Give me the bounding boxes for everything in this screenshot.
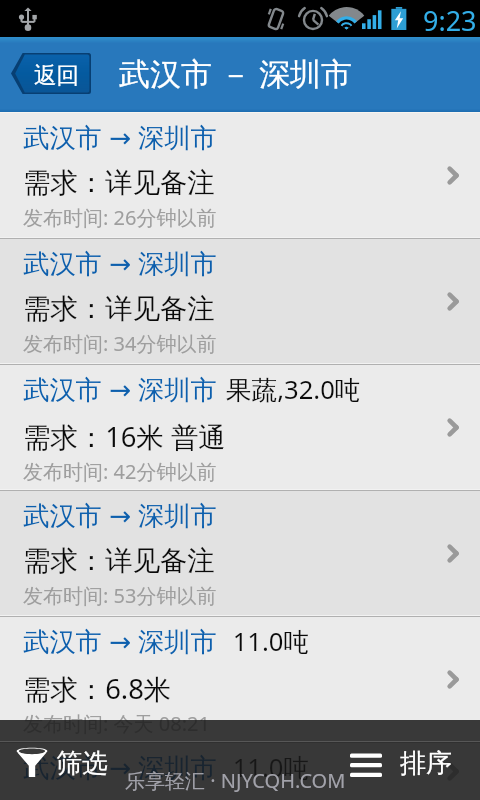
- staticText: 乐享轻汇 · NJYCQH.COM: [125, 767, 346, 794]
- staticText: 需求：6.8米: [23, 670, 172, 707]
- staticText: 武汉市 → 深圳市: [23, 497, 218, 533]
- button[interactable]: 返回: [11, 53, 91, 94]
- staticText: 发布时间: 26分钟以前: [23, 204, 217, 231]
- staticText: 武汉市 → 深圳市: [23, 623, 218, 659]
- staticText: 返回: [34, 61, 79, 89]
- staticText: 武汉市 → 深圳市: [23, 119, 218, 155]
- button[interactable]: 武汉市 → 深圳市: [0, 113, 480, 239]
- staticText: 发布时间: 42分钟以前: [23, 458, 217, 485]
- staticText: 11.0吨: [226, 750, 310, 785]
- staticText: 武汉市 → 深圳市: [23, 245, 218, 281]
- staticText: 武汉市 － 深圳市: [119, 52, 353, 94]
- staticText: 武汉市 → 深圳市: [23, 749, 218, 785]
- button[interactable]: 武汉市 → 深圳市: [0, 239, 480, 365]
- staticText: 武汉市 → 深圳市: [23, 371, 218, 407]
- staticText: 排序: [400, 747, 452, 780]
- button[interactable]: 武汉市 → 深圳市: [0, 617, 480, 743]
- staticText: 需求：详见备注: [23, 544, 215, 579]
- staticText: 筛选: [56, 747, 108, 780]
- staticText: 9:23: [423, 2, 477, 39]
- staticText: 需求：16米 普通: [23, 418, 226, 455]
- staticText: 需求：详见备注: [23, 292, 215, 327]
- button[interactable]: 筛选: [0, 720, 240, 800]
- staticText: 果蔬,32.0吨: [226, 372, 361, 407]
- button[interactable]: 武汉市 → 深圳市: [0, 491, 480, 617]
- staticText: 需求：详见备注: [23, 166, 215, 201]
- button[interactable]: 武汉市 → 深圳市: [0, 743, 480, 800]
- staticText: 发布时间: 53分钟以前: [23, 582, 217, 609]
- staticText: 发布时间: 今天 08:21: [23, 710, 210, 737]
- staticText: 发布时间: 34分钟以前: [23, 330, 217, 357]
- button[interactable]: 排序: [240, 720, 480, 800]
- button[interactable]: 武汉市 → 深圳市: [0, 365, 480, 491]
- staticText: 11.0吨: [226, 624, 310, 659]
